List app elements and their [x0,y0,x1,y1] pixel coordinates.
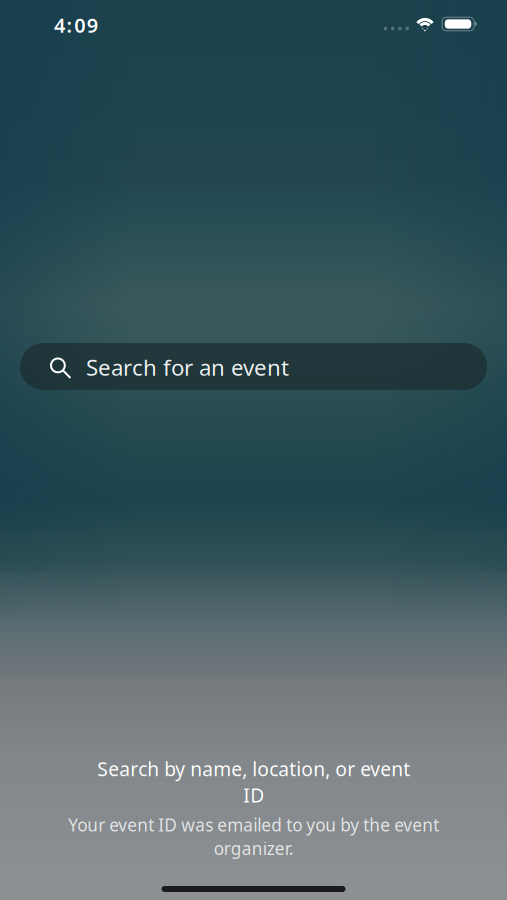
staticText: Your event ID was emailed to you by the … [68,813,439,860]
staticText: Search by name, location, or event ID [97,756,410,808]
staticText: 4:09 [54,11,98,39]
staticText: Search for an event [86,352,289,382]
button[interactable]: Search for an event [20,343,487,390]
